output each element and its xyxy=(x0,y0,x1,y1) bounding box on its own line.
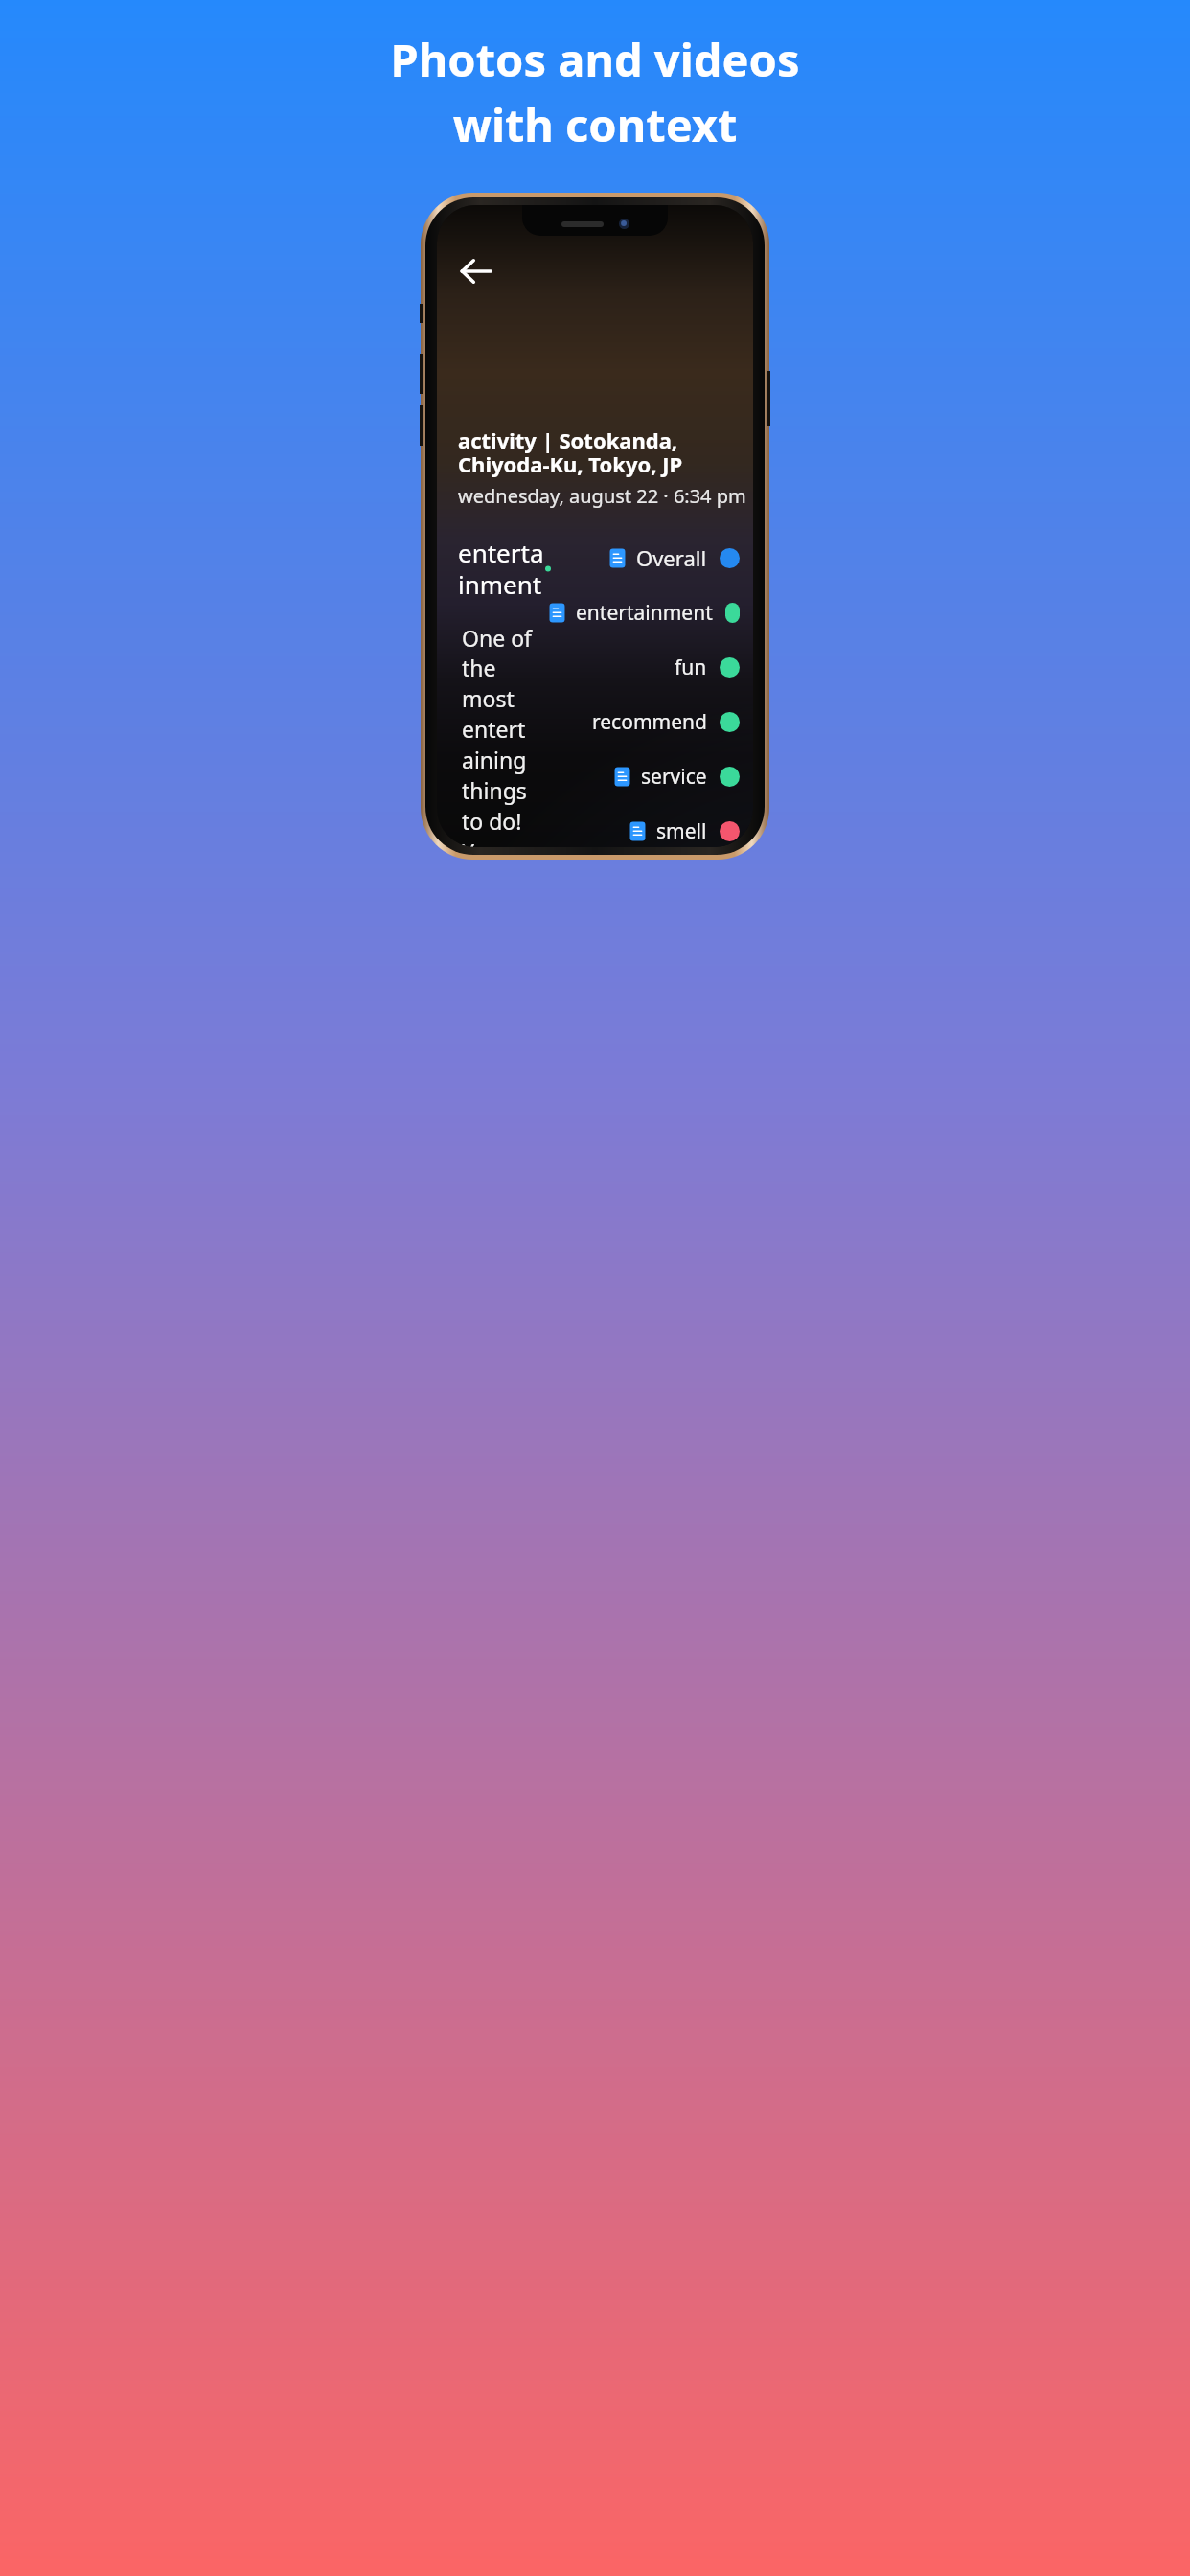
staticText: One of the most entertaining things to d… xyxy=(462,623,535,847)
staticText: Photos and videos with context xyxy=(0,29,1190,155)
staticText: activity | Sotokanda, Chiyoda-Ku, Tokyo,… xyxy=(458,425,753,479)
button[interactable]: fun xyxy=(548,652,740,683)
staticText: service xyxy=(641,763,707,791)
staticText: recommend xyxy=(592,708,707,736)
staticText: fun xyxy=(675,654,707,681)
staticText: wednesday, august 22 · 6:34 pm xyxy=(458,483,746,509)
button[interactable]: smell xyxy=(548,816,740,847)
staticText: Overall xyxy=(636,543,707,572)
staticText: entertainment xyxy=(576,599,713,627)
staticText: entertainment xyxy=(458,536,548,602)
button[interactable]: Overall xyxy=(548,541,740,574)
button[interactable]: entertainment xyxy=(548,597,740,629)
button[interactable]: recommend xyxy=(548,706,740,738)
staticText: smell xyxy=(656,817,707,845)
button[interactable]: service xyxy=(548,761,740,793)
button[interactable]: Back xyxy=(454,249,498,293)
